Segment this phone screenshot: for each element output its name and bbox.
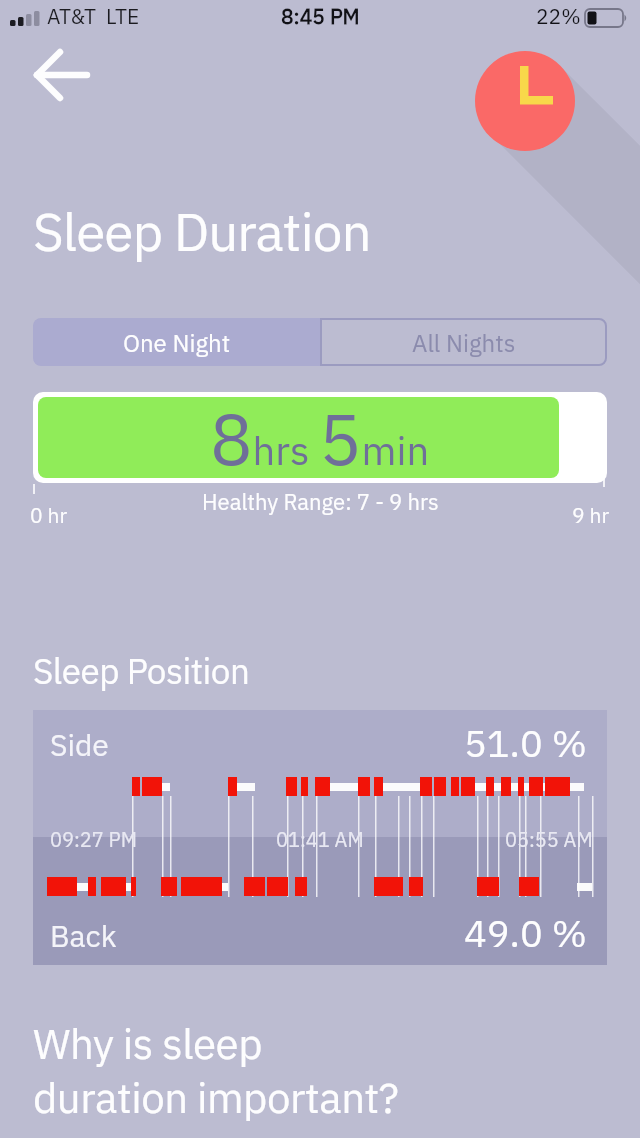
staticText: Healthy Range: 7 - 9 hrs (202, 487, 439, 516)
staticText: 51.0 % (464, 718, 587, 767)
staticText: 05:55 AM (505, 826, 593, 852)
staticText: 49.0 % (464, 908, 587, 957)
staticText: 22% (536, 2, 581, 29)
button[interactable]: Side (33, 710, 607, 965)
button[interactable]: All Nights (320, 318, 607, 366)
staticText: Back (50, 916, 117, 955)
staticText: Why is sleep duration important? (33, 1016, 399, 1124)
button[interactable] (475, 51, 575, 151)
staticText: 9 hr (572, 501, 610, 528)
staticText: Side (50, 725, 109, 764)
staticText: 09:27 PM (50, 826, 137, 852)
button[interactable] (28, 45, 96, 105)
staticText: 0 hr (30, 501, 68, 528)
staticText: AT&T (47, 2, 97, 29)
staticText: 8:45 PM (281, 2, 360, 29)
staticText: 01:41 AM (276, 826, 364, 852)
staticText: 8hrs 5min (210, 392, 430, 483)
staticText: Sleep Duration (33, 197, 371, 266)
staticText: One Night (123, 327, 231, 358)
staticText: Sleep Position (33, 648, 250, 694)
staticText: LTE (106, 2, 140, 29)
button[interactable]: One Night (33, 318, 320, 366)
staticText: All Nights (412, 327, 516, 358)
